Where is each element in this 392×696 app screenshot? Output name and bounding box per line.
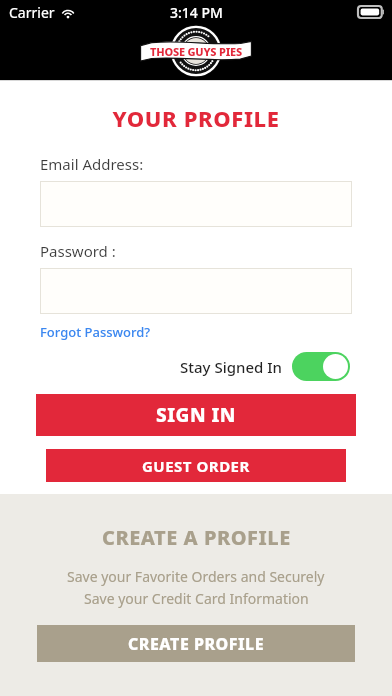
- staticText: Stay Signed In: [180, 357, 282, 377]
- staticText: Carrier: [9, 3, 55, 22]
- button[interactable]: Forgot Password?: [40, 323, 151, 341]
- staticText: Email Address:: [40, 154, 144, 174]
- staticText: YOUR PROFILE: [0, 103, 392, 133]
- button[interactable]: [40, 268, 352, 314]
- staticText: CREATE PROFILE: [128, 633, 265, 655]
- staticText: CREATE A PROFILE: [102, 524, 291, 551]
- button[interactable]: CREATE PROFILE: [37, 625, 355, 662]
- button[interactable]: Stay Signed In toggle: [292, 352, 350, 381]
- button[interactable]: SIGN IN: [36, 394, 356, 436]
- staticText: Forgot Password?: [40, 323, 151, 341]
- staticText: THOSE GUYS PIES: [150, 44, 242, 59]
- staticText: 3:14 PM: [170, 3, 223, 22]
- staticText: GUEST ORDER: [142, 456, 250, 476]
- staticText: Save your Credit Card Information: [84, 589, 309, 608]
- staticText: Password :: [40, 241, 116, 261]
- staticText: SIGN IN: [156, 402, 236, 428]
- other: Those Guys Pies logo: [140, 25, 252, 77]
- button[interactable]: GUEST ORDER: [46, 449, 346, 482]
- button[interactable]: [40, 181, 352, 227]
- staticText: Save your Favorite Orders and Securely: [67, 567, 325, 586]
